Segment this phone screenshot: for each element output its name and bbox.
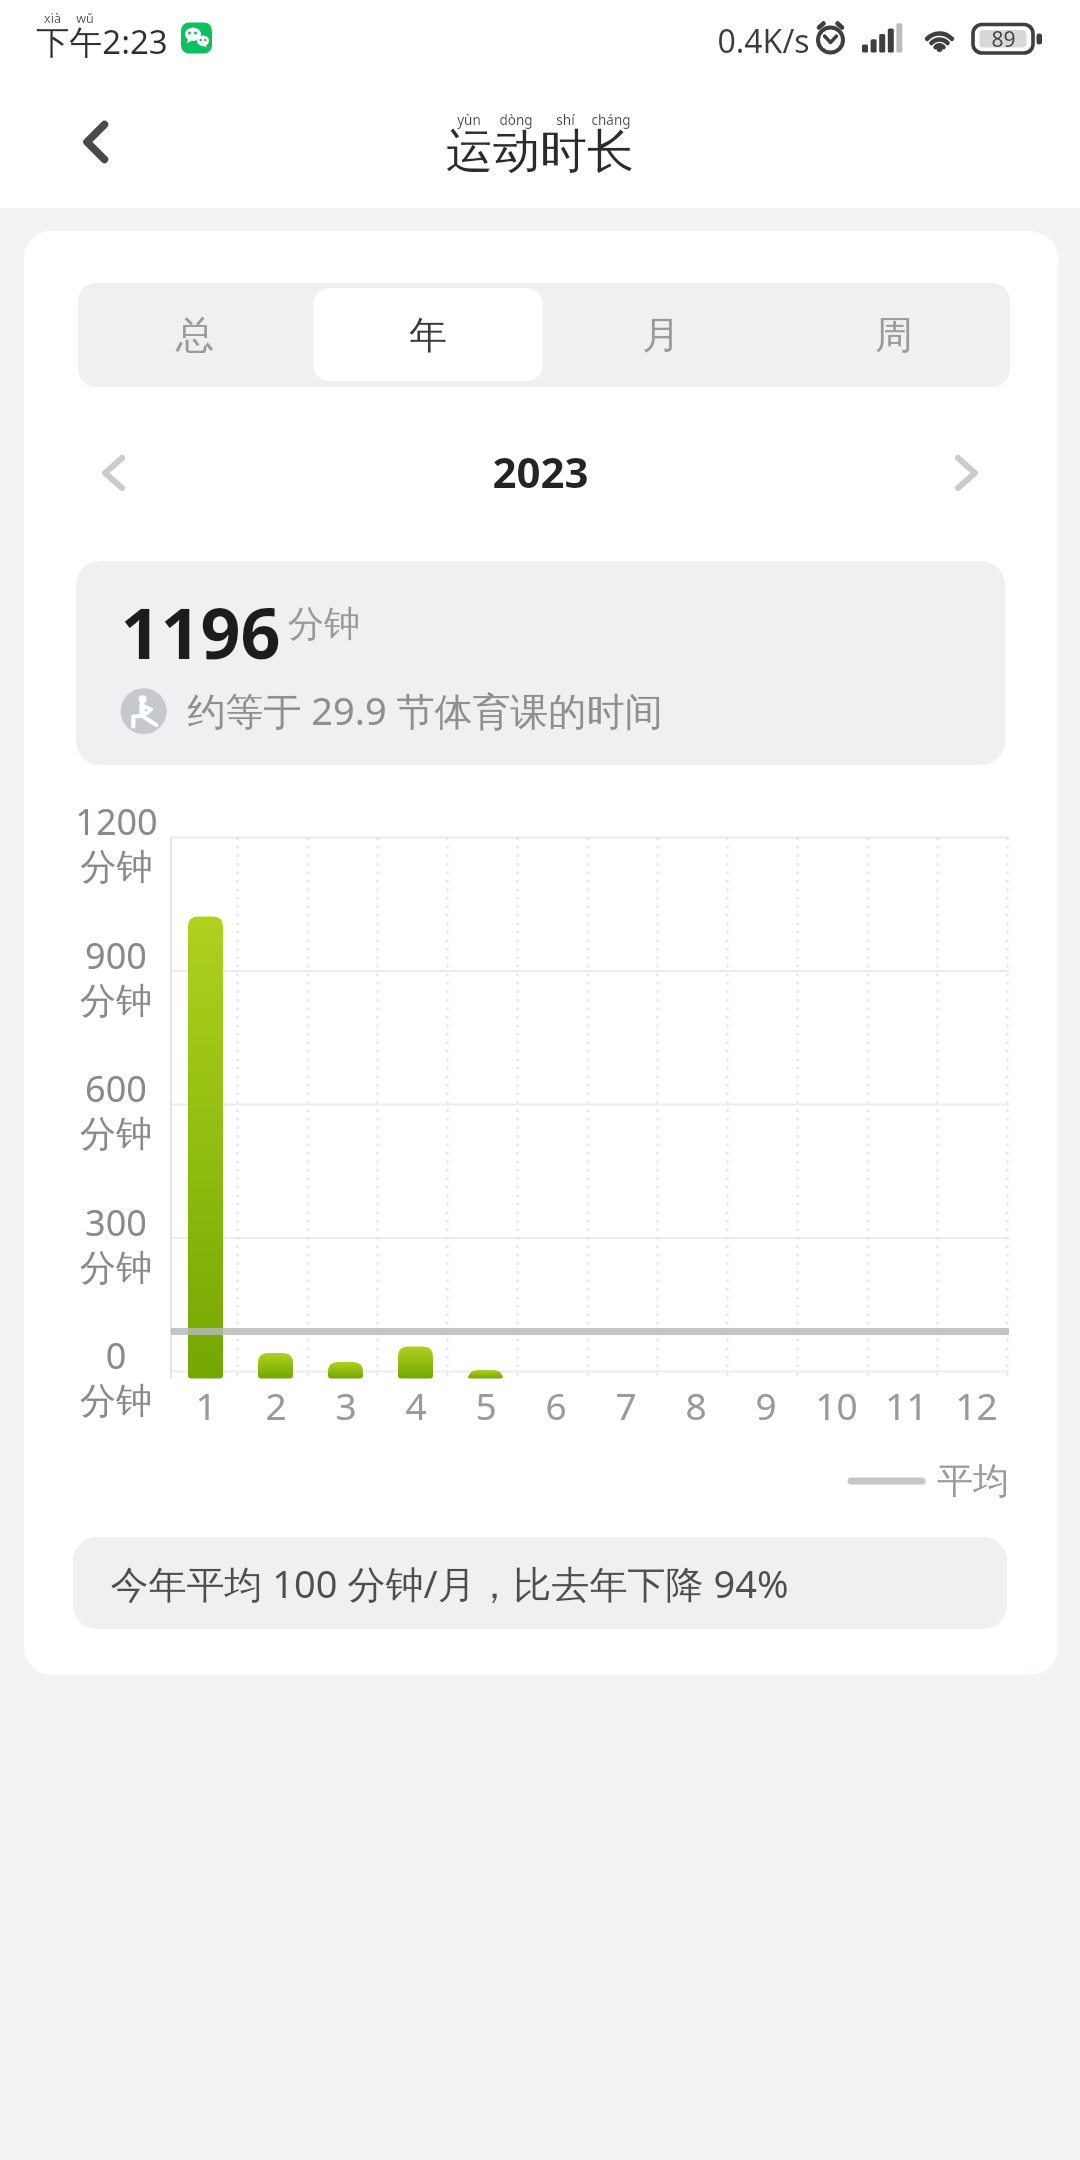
staticText: wǔ (76, 10, 94, 27)
staticText: 平均 (937, 1458, 1009, 1503)
button[interactable] (926, 432, 1006, 512)
staticText: 9 (755, 1380, 777, 1430)
staticText: 2023 (492, 443, 589, 500)
staticText: cháng (591, 111, 631, 129)
staticText: 12 (955, 1380, 998, 1430)
staticText: 年 (409, 311, 447, 359)
staticText: 3 (335, 1380, 357, 1430)
staticText: 今年平均 100 分钟/月，比去年下降 94% (110, 1557, 789, 1609)
staticText: 月 (642, 311, 680, 359)
staticText: 分钟 (288, 601, 360, 646)
staticText: 300 分钟 (80, 1198, 152, 1290)
button[interactable]: 总 (78, 283, 311, 387)
staticText: 10 (815, 1380, 858, 1430)
staticText: shí (556, 111, 575, 129)
staticText: 89 (991, 25, 1016, 54)
button[interactable]: 月 (544, 283, 777, 387)
staticText: 7 (615, 1380, 637, 1430)
staticText: 11 (885, 1380, 928, 1430)
staticText: yùn (457, 111, 481, 129)
staticText: 总 (176, 311, 214, 359)
staticText: 0.4K/s (717, 19, 810, 63)
staticText: 6 (545, 1380, 567, 1430)
staticText: 1196 (120, 584, 281, 679)
staticText: 4 (405, 1380, 427, 1430)
staticText: 2 (265, 1380, 287, 1430)
staticText: dòng (499, 111, 533, 129)
staticText: 周 (875, 311, 913, 359)
staticText: 900 分钟 (80, 931, 152, 1023)
staticText: 约等于 29.9 节体育课的时间 (187, 684, 663, 736)
staticText: 0 分钟 (80, 1331, 152, 1423)
staticText: 5 (475, 1380, 497, 1430)
staticText: 运动时长 (446, 122, 634, 181)
staticText: xià (44, 10, 61, 27)
staticText: 1 (195, 1380, 217, 1430)
staticText: 600 分钟 (80, 1064, 152, 1156)
staticText: 1200 分钟 (75, 797, 158, 889)
staticText: 8 (685, 1380, 707, 1430)
button[interactable] (73, 432, 153, 512)
staticText: 下午2:23 (36, 19, 168, 64)
button[interactable]: 年 (311, 283, 544, 387)
button[interactable]: 周 (777, 283, 1010, 387)
button[interactable] (55, 102, 135, 182)
